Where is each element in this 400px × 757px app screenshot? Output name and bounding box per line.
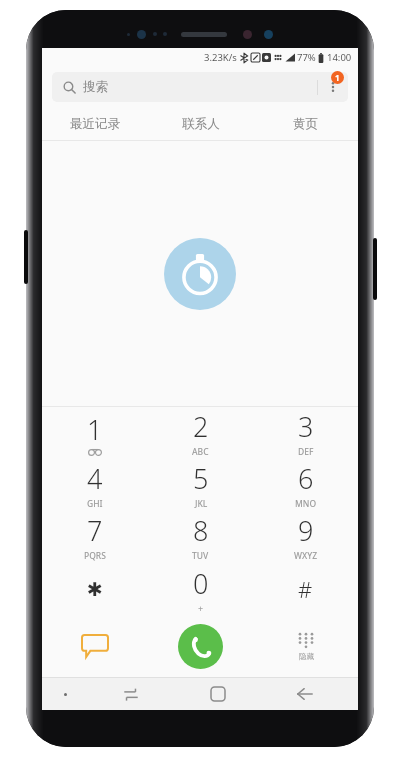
button[interactable]: 1 — [42, 407, 148, 459]
button[interactable]: Call — [178, 624, 223, 669]
button[interactable]: 5 — [148, 459, 253, 511]
staticText: 0 — [193, 565, 209, 602]
staticText: 5 — [193, 460, 209, 497]
staticText: 3.23K/s — [204, 51, 237, 64]
staticText: 搜索 — [83, 79, 108, 95]
staticText: 4 — [87, 460, 103, 497]
staticText: WXYZ — [294, 550, 318, 562]
staticText: 最近记录 — [70, 116, 120, 132]
button[interactable]: More options — [318, 72, 348, 102]
staticText: 1 — [87, 411, 103, 448]
staticText: 隐藏 — [299, 652, 314, 661]
staticText: 1 — [335, 72, 340, 83]
button[interactable]: 4 — [42, 459, 148, 511]
staticText: 联系人 — [182, 116, 220, 132]
button[interactable]: 6 — [253, 459, 358, 511]
staticText: 77% — [297, 51, 316, 64]
button[interactable]: 9 — [253, 511, 358, 563]
button[interactable]: # — [253, 563, 358, 615]
button[interactable]: Send message — [42, 615, 148, 677]
staticText: 2 — [193, 408, 209, 445]
button[interactable]: 联系人 — [148, 107, 253, 140]
button[interactable]: 搜索 — [52, 72, 348, 102]
button[interactable]: 黄页 — [253, 107, 358, 140]
button[interactable]: Back — [261, 678, 348, 710]
staticText: # — [298, 574, 313, 604]
staticText: 8 — [193, 512, 209, 549]
staticText: GHI — [87, 498, 103, 510]
button[interactable]: 2 — [148, 407, 253, 459]
button[interactable]: 0 — [148, 563, 253, 615]
staticText: 7 — [87, 512, 103, 549]
staticText: 14:00 — [327, 51, 352, 64]
button[interactable]: 7 — [42, 511, 148, 563]
staticText: 黄页 — [293, 116, 318, 132]
staticText: TUV — [192, 550, 209, 562]
staticText: 3 — [298, 408, 314, 445]
button[interactable]: Hide keypad — [253, 615, 358, 677]
button[interactable]: ✱ — [42, 563, 148, 615]
button[interactable]: 3 — [253, 407, 358, 459]
staticText: DEF — [298, 446, 314, 458]
button[interactable]: Recents — [88, 678, 174, 710]
staticText: MNO — [295, 498, 317, 510]
staticText: ABC — [192, 446, 209, 458]
button[interactable]: 最近记录 — [42, 107, 148, 140]
button[interactable]: Home — [174, 678, 261, 710]
staticText: ✱ — [87, 578, 103, 600]
staticText: + — [198, 602, 204, 614]
button[interactable]: 8 — [148, 511, 253, 563]
staticText: JKL — [195, 498, 208, 510]
staticText: 6 — [298, 460, 314, 497]
staticText: PQRS — [84, 550, 106, 562]
staticText: 9 — [298, 512, 314, 549]
